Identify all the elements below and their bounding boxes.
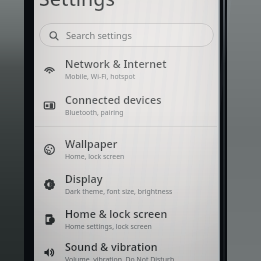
staticText: Bluetooth, pairing [65,108,124,117]
staticText: Display [65,172,103,186]
staticText: Home & lock screen [65,207,168,221]
staticText: Wallpaper [65,137,118,151]
button[interactable]: Network & Internet [34,54,218,84]
button[interactable]: Home & lock screen [34,204,218,234]
staticText: Mobile, Wi-Fi, hotspot [65,72,136,81]
button[interactable]: Search settings [39,23,214,47]
staticText: Volume, vibration, Do Not Disturb [65,255,175,261]
button[interactable]: Connected devices [34,90,218,120]
button[interactable]: Wallpaper [34,134,218,164]
staticText: Connected devices [65,93,162,107]
staticText: Home, lock screen [65,152,125,161]
staticText: Search settings [66,29,132,42]
button[interactable]: Display [34,169,218,199]
staticText: Home settings, lock screen [65,222,152,231]
staticText: Sound & vibration [65,240,158,254]
staticText: Network & Internet [65,57,167,71]
button[interactable]: Sound & vibration [34,237,218,261]
staticText: Dark theme, font size, brightness [65,187,173,196]
staticText: Settings [39,0,115,12]
